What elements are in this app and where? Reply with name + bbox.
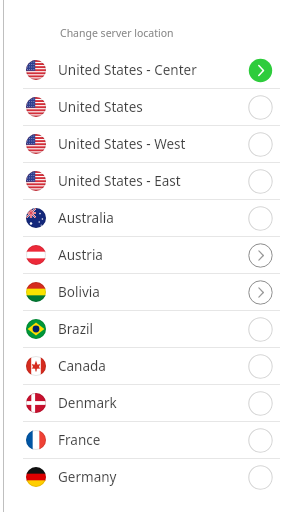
staticText: United States xyxy=(58,98,232,116)
button[interactable]: United States xyxy=(0,89,288,125)
button[interactable]: Select server xyxy=(247,168,273,194)
staticText: Change server location xyxy=(60,26,174,40)
button[interactable]: Austria xyxy=(0,237,288,273)
button[interactable]: Select server xyxy=(247,316,273,342)
button[interactable]: Denmark xyxy=(0,385,288,421)
button[interactable]: Select server xyxy=(247,94,273,120)
button[interactable]: Bolivia xyxy=(0,274,288,310)
button[interactable]: Germany xyxy=(0,459,288,495)
button[interactable]: France xyxy=(0,422,288,458)
staticText: Canada xyxy=(58,357,232,375)
button[interactable]: Show server group xyxy=(247,279,273,305)
button[interactable]: Select server xyxy=(247,353,273,379)
staticText: Brazil xyxy=(58,320,232,338)
staticText: France xyxy=(58,431,232,449)
button[interactable]: Select server xyxy=(247,427,273,453)
button[interactable]: Select server xyxy=(247,464,273,490)
staticText: United States - East xyxy=(58,172,232,190)
button[interactable]: Selected server xyxy=(247,57,273,83)
button[interactable]: United States - West xyxy=(0,126,288,162)
button[interactable]: Select server xyxy=(247,205,273,231)
button[interactable]: Select server xyxy=(247,131,273,157)
button[interactable]: Canada xyxy=(0,348,288,384)
staticText: Bolivia xyxy=(58,283,232,301)
button[interactable]: Brazil xyxy=(0,311,288,347)
button[interactable]: Show server group xyxy=(247,242,273,268)
staticText: United States - West xyxy=(58,135,232,153)
button[interactable]: Australia xyxy=(0,200,288,236)
staticText: Austria xyxy=(58,246,232,264)
staticText: Australia xyxy=(58,209,232,227)
button[interactable]: United States - Center xyxy=(0,52,288,88)
staticText: Denmark xyxy=(58,394,232,412)
button[interactable]: United States - East xyxy=(0,163,288,199)
staticText: Germany xyxy=(58,468,232,486)
button[interactable]: Select server xyxy=(247,390,273,416)
staticText: United States - Center xyxy=(58,61,232,79)
